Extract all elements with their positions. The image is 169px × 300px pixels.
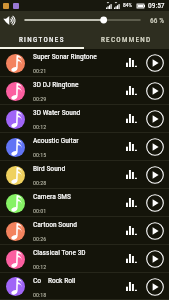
button[interactable]: Super Sonar Ringtone: [0, 49, 169, 77]
button[interactable]: Equalizer: [122, 225, 137, 237]
staticText: 00:28: [33, 179, 47, 186]
staticText: Super Sonar Ringtone: [33, 52, 97, 61]
button[interactable]: Play: [146, 82, 164, 100]
button[interactable]: Equalizer: [122, 57, 137, 69]
button[interactable]: Play: [146, 166, 164, 184]
button[interactable]: Camera SMS: [0, 189, 169, 217]
staticText: Cartoon Sound: [33, 220, 77, 229]
staticText: Classical Tone 3D: [33, 248, 86, 257]
staticText: 00:29: [33, 95, 47, 102]
button[interactable]: Equalizer: [122, 253, 137, 265]
staticText: 00:15: [33, 151, 47, 158]
button[interactable]: Bird Sound: [0, 161, 169, 189]
staticText: 00:12: [33, 123, 47, 130]
staticText: 00:26: [33, 235, 47, 242]
button[interactable]: Play: [146, 194, 164, 212]
button[interactable]: RECOMMEND: [84, 29, 169, 47]
button[interactable]: Equalizer: [122, 85, 137, 97]
staticText: Camera SMS: [33, 192, 71, 201]
other: Volume: [3, 16, 18, 25]
button[interactable]: Co Rock Roll: [0, 273, 169, 300]
staticText: Bird Sound: [33, 164, 66, 173]
button[interactable]: Acoustic Guitar: [0, 133, 169, 161]
button[interactable]: Classical Tone 3D: [0, 245, 169, 273]
button[interactable]: Equalizer: [122, 113, 137, 125]
button[interactable]: 3D Water Sound: [0, 105, 169, 133]
button[interactable]: Equalizer: [122, 197, 137, 209]
staticText: Co Rock Roll: [33, 276, 76, 285]
staticText: 84%: [123, 2, 133, 9]
staticText: 3D DJ Ringtone: [33, 80, 79, 89]
staticText: 66 %: [150, 16, 164, 25]
button[interactable]: Play: [146, 250, 164, 268]
button[interactable]: Play: [146, 222, 164, 240]
button[interactable]: Equalizer: [122, 169, 137, 181]
staticText: 3D Water Sound: [33, 108, 81, 117]
staticText: Acoustic Guitar: [33, 136, 79, 145]
staticText: 00:21: [33, 67, 47, 74]
staticText: RINGTONES: [19, 35, 65, 43]
button[interactable]: Equalizer: [122, 141, 137, 153]
button[interactable]: RINGTONES: [0, 29, 84, 47]
button[interactable]: Equalizer: [122, 281, 137, 293]
button[interactable]: Play: [146, 110, 164, 128]
button[interactable]: Play: [146, 54, 164, 72]
staticText: 00:01: [33, 207, 47, 214]
staticText: 00:18: [33, 291, 47, 298]
staticText: RECOMMEND: [101, 35, 152, 43]
button[interactable]: Cartoon Sound: [0, 217, 169, 245]
button[interactable]: Play: [146, 138, 164, 156]
staticText: 09:57: [148, 1, 165, 10]
button[interactable]: Play: [146, 278, 164, 296]
staticText: 00:12: [33, 263, 47, 270]
button[interactable]: 3D DJ Ringtone: [0, 77, 169, 105]
